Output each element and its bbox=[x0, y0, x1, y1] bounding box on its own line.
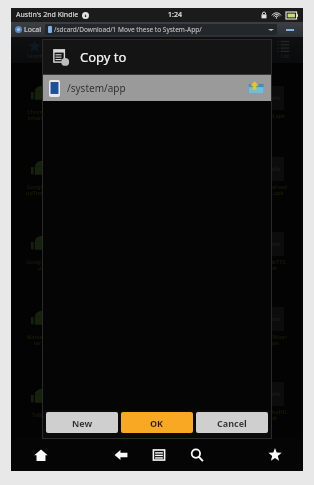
staticText: MarketUpda ter.apk bbox=[26, 333, 59, 347]
button[interactable]: GalleryGoogl e.apk bbox=[131, 65, 183, 139]
button[interactable]: OK bbox=[121, 412, 193, 433]
button[interactable]: kindle bbox=[246, 289, 298, 364]
staticText: Favorite bbox=[23, 53, 46, 60]
staticText: 1:24 bbox=[168, 10, 182, 20]
button[interactable]: kindle bbox=[246, 364, 298, 439]
staticText: SetupWizar d.apk bbox=[257, 333, 287, 347]
button[interactable]: kindle bbox=[246, 139, 298, 214]
staticText: /sdcard/Download/1 Move these to System-… bbox=[54, 25, 202, 34]
staticText: kindle bbox=[263, 94, 281, 102]
staticText: New bbox=[72, 417, 93, 429]
staticText: VoiceSearch .apk bbox=[198, 408, 230, 422]
staticText: GoogleMaps .apk bbox=[26, 258, 59, 272]
staticText: Gmail.apk bbox=[259, 112, 285, 119]
button[interactable]: Search bbox=[178, 439, 216, 471]
button[interactable]: GoogleMaps .apk bbox=[16, 214, 68, 289]
button[interactable]: Favorites bbox=[247, 439, 303, 471]
staticText: List bbox=[277, 53, 290, 60]
staticText: Cancel bbox=[217, 417, 247, 429]
button[interactable]: List bbox=[263, 37, 303, 63]
button[interactable]: Up one folder bbox=[247, 79, 265, 97]
button[interactable]: ChromeBoo kmarks.apk bbox=[16, 65, 68, 139]
staticText: YoutubeHD. apk bbox=[257, 408, 288, 422]
button[interactable]: Talk.apk bbox=[16, 364, 68, 439]
button[interactable]: GenieWidget .apk bbox=[188, 65, 240, 139]
staticText: Talk.apk bbox=[32, 411, 53, 418]
staticText: Term.apk bbox=[88, 411, 113, 418]
staticText: Local bbox=[24, 25, 41, 35]
staticText: GoogleBack upTranspo... bbox=[26, 183, 58, 197]
button[interactable]: Minimize bbox=[277, 22, 303, 37]
button[interactable]: /sdcard/Download/1 Move these to System-… bbox=[45, 24, 277, 35]
button[interactable]: New bbox=[46, 412, 118, 433]
staticText: kindle bbox=[91, 90, 109, 98]
button[interactable]: Cancel bbox=[196, 412, 268, 433]
button[interactable]: Local bbox=[11, 22, 45, 37]
staticText: UniversalSe arch.apk bbox=[142, 408, 173, 422]
button[interactable]: Home bbox=[11, 439, 71, 471]
button[interactable]: GoogleBack upTranspo... bbox=[16, 139, 68, 214]
staticText: GoogleTTS. apk bbox=[257, 258, 287, 272]
staticText: kindle bbox=[263, 240, 281, 248]
staticText: ChromeBoo kmarks.apk bbox=[27, 108, 58, 122]
button[interactable]: kindle bbox=[246, 214, 298, 289]
button[interactable]: MarketUpda ter.apk bbox=[16, 289, 68, 364]
button[interactable]: kindle bbox=[74, 364, 126, 439]
button[interactable]: Favorite bbox=[11, 37, 57, 63]
staticText: Austin's 2nd Kindle bbox=[16, 10, 79, 20]
button[interactable]: kindle bbox=[74, 65, 126, 139]
staticText: GoogleFeed back.apk bbox=[256, 183, 288, 197]
staticText: OK bbox=[150, 417, 164, 429]
button[interactable]: kindle bbox=[246, 65, 298, 139]
button[interactable]: Back bbox=[102, 439, 140, 471]
staticText: kindle bbox=[263, 165, 281, 173]
button[interactable]: Menu bbox=[140, 439, 178, 471]
staticText: /system/app bbox=[67, 81, 126, 95]
staticText: kindle bbox=[263, 390, 281, 398]
button[interactable]: UniversalSe arch.apk bbox=[131, 364, 183, 439]
button[interactable]: /system/app bbox=[43, 75, 271, 101]
button[interactable]: VoiceSearch .apk bbox=[188, 364, 240, 439]
staticText: kindle bbox=[263, 315, 281, 323]
staticText: Copy to bbox=[80, 48, 127, 66]
